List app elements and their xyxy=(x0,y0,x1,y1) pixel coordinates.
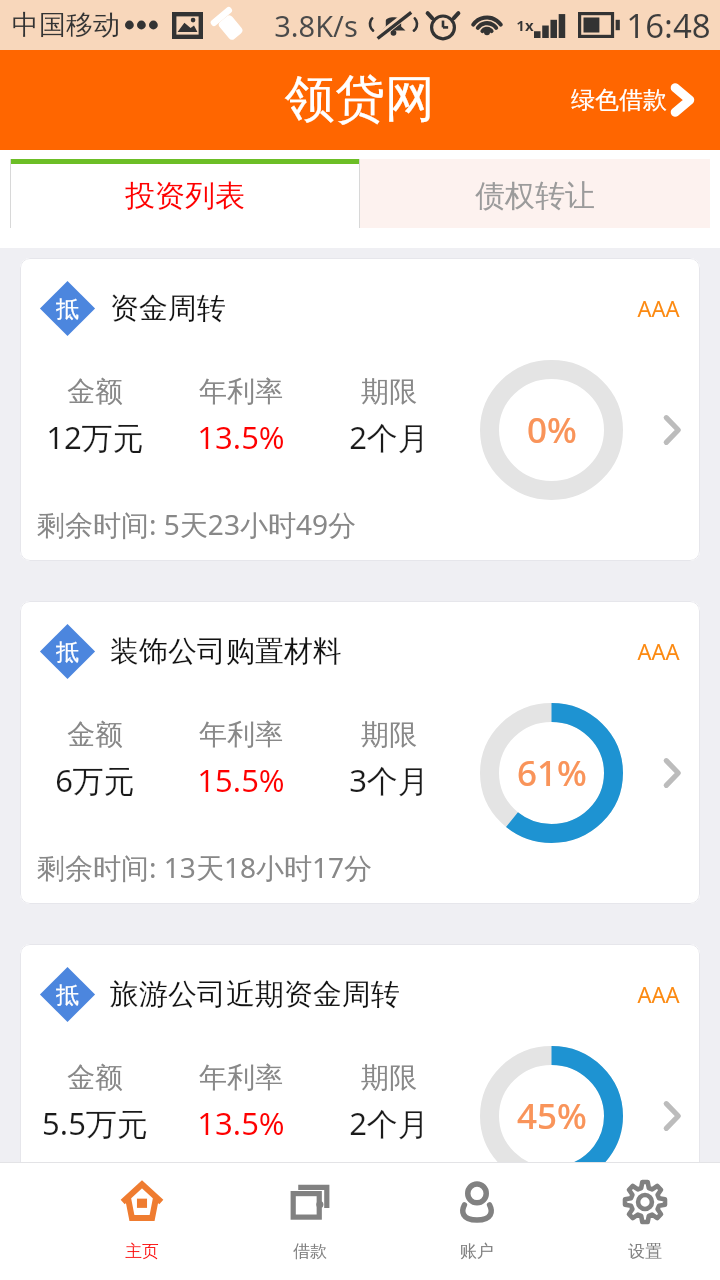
staticText: 年利率 xyxy=(199,717,283,752)
staticText: 旅游公司近期资金周转 xyxy=(110,976,400,1013)
staticText: 金额 xyxy=(67,717,123,752)
staticText: AAA xyxy=(637,636,680,666)
staticText: 16:48 xyxy=(626,3,711,48)
staticText: 抵 xyxy=(56,981,79,1010)
staticText: 6万元 xyxy=(55,759,135,801)
button[interactable]: 抵 xyxy=(20,944,700,1162)
staticText: 13.5% xyxy=(197,1102,285,1144)
staticText: 金额 xyxy=(67,374,123,409)
staticText: 设置 xyxy=(628,1241,662,1262)
staticText: 61% xyxy=(517,749,587,797)
staticText: 投资列表 xyxy=(125,177,245,215)
button[interactable]: Account xyxy=(393,1162,561,1280)
staticText: 资金周转 xyxy=(110,290,226,327)
staticText: AAA xyxy=(637,293,680,323)
button[interactable]: Settings xyxy=(561,1162,720,1280)
staticText: 抵 xyxy=(56,295,79,324)
staticText: 5.5万元 xyxy=(42,1102,148,1144)
staticText: 期限 xyxy=(361,717,417,752)
staticText: 期限 xyxy=(361,1060,417,1095)
staticText: 1x xyxy=(516,15,534,35)
staticText: 3.8K/s xyxy=(274,6,358,45)
button[interactable]: 投资列表 xyxy=(10,159,360,228)
staticText: 抵 xyxy=(56,638,79,667)
staticText: 年利率 xyxy=(199,1060,283,1095)
staticText: 绿色借款 xyxy=(571,85,667,115)
staticText: 装饰公司购置材料 xyxy=(110,633,342,670)
staticText: 2个月 xyxy=(349,1102,429,1144)
staticText: 剩余时间: 5天23小时49分 xyxy=(37,505,356,543)
staticText: 金额 xyxy=(67,1060,123,1095)
staticText: 主页 xyxy=(125,1241,159,1262)
staticText: 期限 xyxy=(361,374,417,409)
button[interactable]: Home xyxy=(58,1162,226,1280)
staticText: 12万元 xyxy=(46,416,144,458)
staticText: 2个月 xyxy=(349,416,429,458)
staticText: 账户 xyxy=(460,1241,494,1262)
staticText: 中国移动 xyxy=(12,8,120,42)
staticText: 剩余时间: 13天18小时17分 xyxy=(37,848,372,886)
staticText: 15.5% xyxy=(197,759,285,801)
staticText: 债权转让 xyxy=(475,177,595,215)
button[interactable]: 抵 xyxy=(20,258,700,561)
staticText: 13.5% xyxy=(197,416,285,458)
button[interactable]: 债权转让 xyxy=(360,159,710,228)
button[interactable]: 绿色借款 xyxy=(555,69,720,131)
staticText: 0% xyxy=(527,406,577,454)
staticText: 领贷网 xyxy=(285,68,435,131)
staticText: 年利率 xyxy=(199,374,283,409)
staticText: 借款 xyxy=(293,1241,327,1262)
staticText: 3个月 xyxy=(349,759,429,801)
button[interactable]: 抵 xyxy=(20,601,700,904)
button[interactable]: Loans xyxy=(226,1162,394,1280)
staticText: AAA xyxy=(637,979,680,1009)
staticText: 45% xyxy=(517,1092,587,1140)
